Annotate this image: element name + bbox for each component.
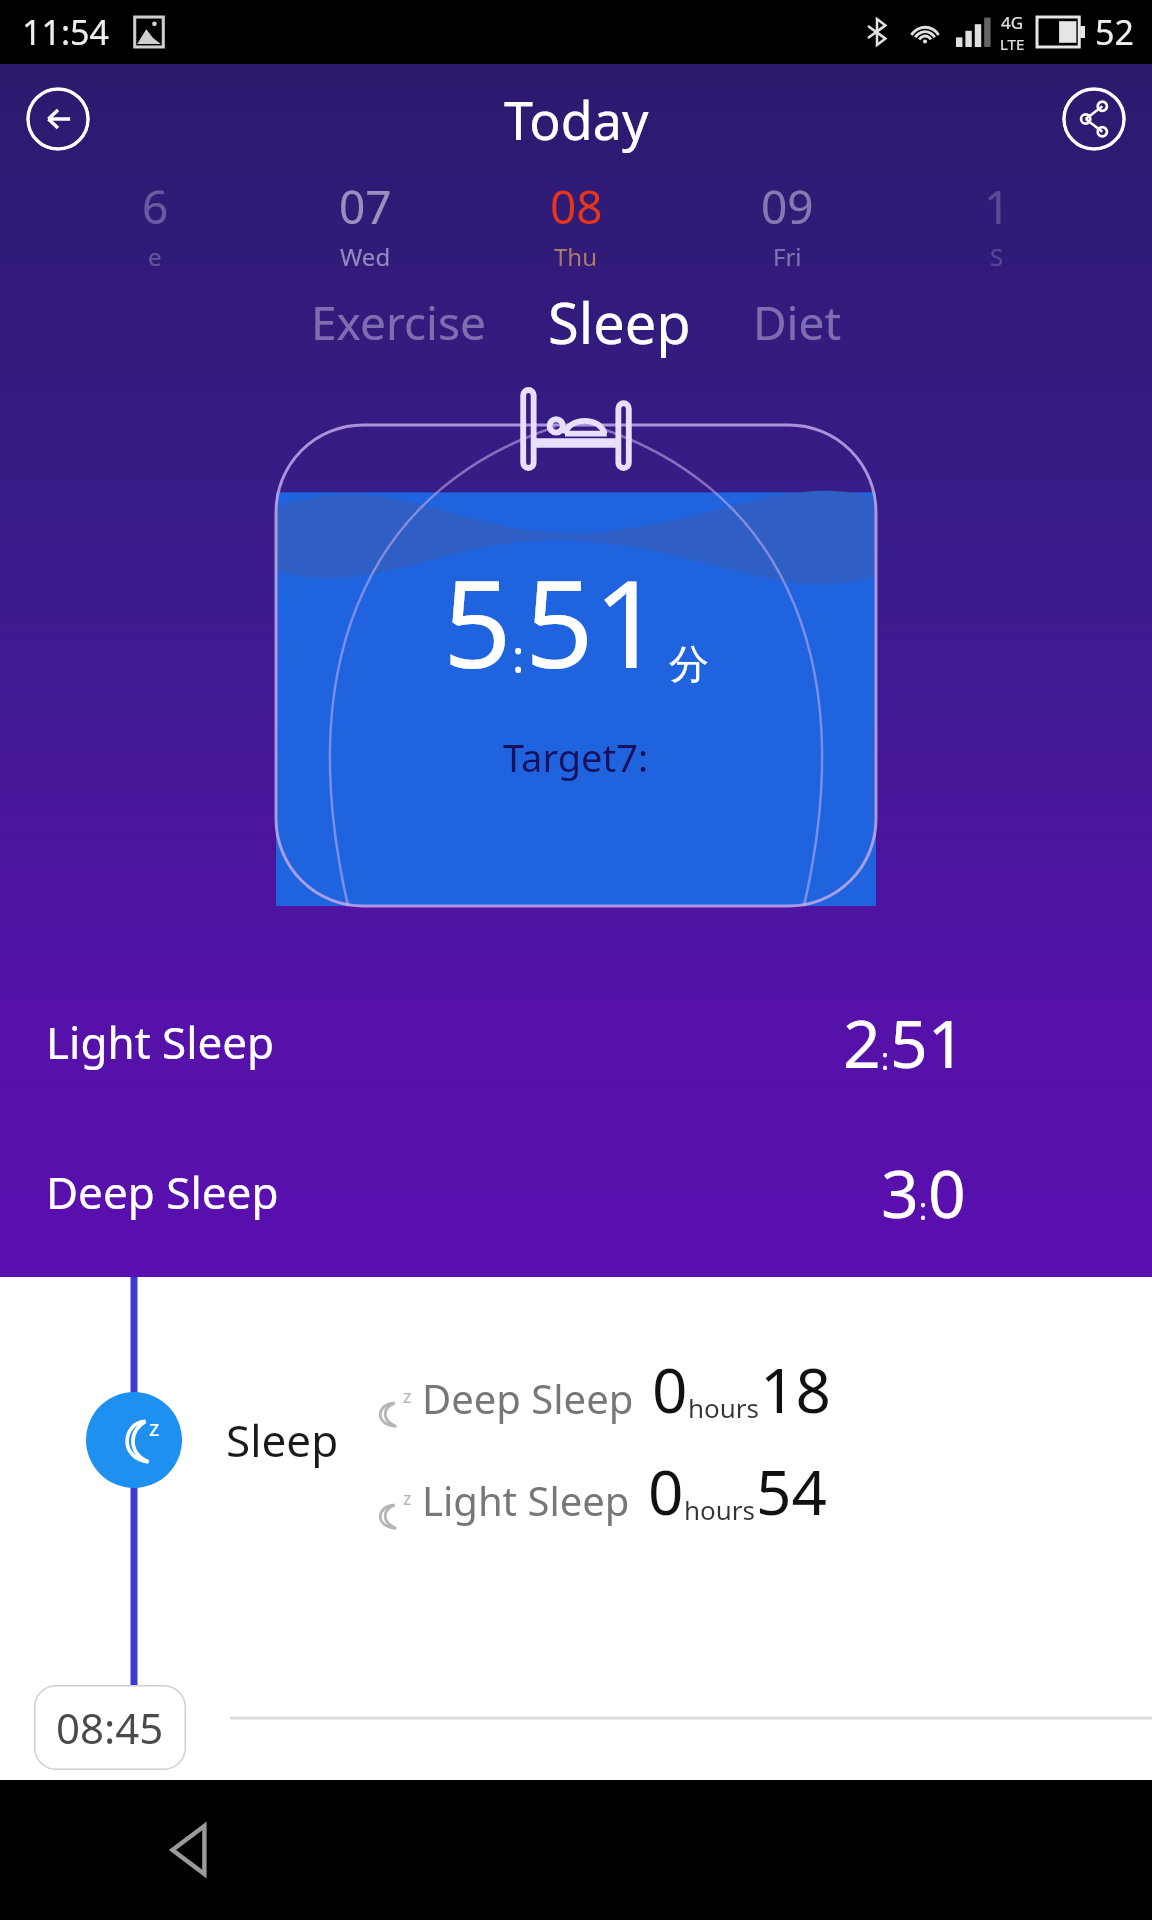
button[interactable]: z: [0, 1347, 1152, 1533]
staticText: 2: [843, 997, 881, 1087]
button[interactable]: Deep Sleep: [0, 1117, 1152, 1267]
staticText: 0: [648, 1449, 684, 1533]
button[interactable]: Exercise: [293, 291, 504, 354]
staticText: hours: [684, 1492, 756, 1527]
staticText: 4G: [1001, 11, 1024, 34]
staticText: 51: [525, 540, 663, 703]
button[interactable]: 6: [95, 175, 215, 273]
staticText: 08: [550, 175, 603, 238]
button[interactable]: Light Sleep: [0, 967, 1152, 1117]
staticText: 0: [928, 1147, 966, 1237]
button[interactable]: 1: [937, 175, 1057, 273]
staticText: z: [403, 1486, 412, 1511]
staticText: Exercise: [311, 291, 486, 354]
staticText: Light Sleep: [422, 1473, 630, 1527]
staticText: 3: [881, 1147, 919, 1237]
staticText: Target7:: [503, 731, 649, 783]
staticText: Fri: [773, 240, 802, 273]
staticText: 11:54: [22, 9, 109, 55]
button[interactable]: 08:45: [34, 1685, 186, 1770]
staticText: LTE: [1000, 34, 1025, 54]
staticText: hours: [688, 1390, 760, 1425]
staticText: Thu: [554, 240, 598, 273]
staticText: Sleep: [548, 284, 691, 360]
staticText: Light Sleep: [46, 1012, 275, 1072]
staticText: e: [148, 240, 162, 273]
staticText: 1: [984, 175, 1011, 238]
staticText: 07: [339, 175, 392, 238]
staticText: 08:45: [56, 1699, 164, 1756]
button[interactable]: Sleep: [530, 284, 709, 360]
button[interactable]: 08: [516, 175, 636, 273]
button[interactable]: 07: [305, 175, 425, 273]
staticText: 52: [1095, 9, 1134, 55]
button[interactable]: Back: [26, 87, 90, 151]
staticText: 0: [652, 1347, 688, 1431]
staticText: 18: [760, 1347, 831, 1431]
staticText: Today: [504, 84, 649, 155]
staticText: :: [881, 1038, 890, 1079]
button[interactable]: 09: [727, 175, 847, 273]
button[interactable]: Share: [1062, 87, 1126, 151]
staticText: 6: [142, 175, 169, 238]
staticText: 51: [890, 997, 966, 1087]
staticText: :: [512, 624, 525, 687]
staticText: 54: [756, 1449, 827, 1533]
staticText: Diet: [753, 291, 841, 354]
button[interactable]: Diet: [735, 291, 859, 354]
staticText: z: [149, 1412, 160, 1442]
staticText: S: [990, 240, 1004, 273]
staticText: Sleep: [226, 1410, 339, 1470]
staticText: 分: [669, 639, 709, 689]
staticText: :: [919, 1188, 928, 1229]
staticText: z: [403, 1384, 412, 1409]
staticText: Deep Sleep: [46, 1162, 279, 1222]
staticText: Wed: [340, 240, 391, 273]
staticText: 5: [443, 540, 512, 703]
button[interactable]: Back: [150, 1810, 230, 1890]
staticText: Deep Sleep: [422, 1371, 634, 1425]
staticText: 09: [761, 175, 814, 238]
